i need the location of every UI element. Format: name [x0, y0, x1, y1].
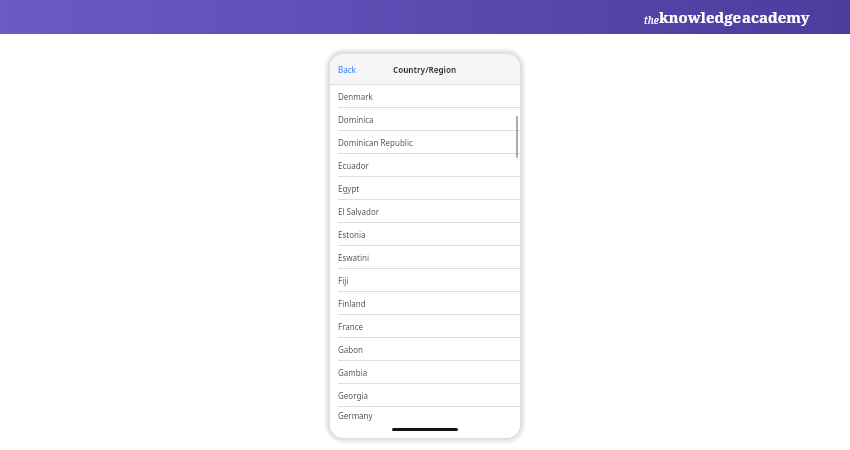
button[interactable]: Egypt — [330, 177, 520, 200]
staticText: Denmark — [338, 91, 373, 102]
staticText: Estonia — [338, 229, 366, 240]
staticText: Ecuador — [338, 160, 369, 171]
button[interactable]: El Salvador — [330, 200, 520, 223]
button[interactable]: Germany — [330, 407, 520, 424]
staticText: El Salvador — [338, 206, 380, 217]
staticText: knowledge — [659, 7, 742, 27]
button[interactable]: Denmark — [330, 85, 520, 108]
button[interactable]: Back — [335, 59, 359, 80]
staticText: Gabon — [338, 344, 364, 355]
staticText: Dominica — [338, 114, 374, 125]
staticText: Egypt — [338, 183, 360, 194]
staticText: Country/Region — [393, 64, 457, 75]
staticText: Gambia — [338, 367, 368, 378]
staticText: France — [338, 321, 364, 332]
button[interactable]: Ecuador — [330, 154, 520, 177]
staticText: academy — [742, 7, 810, 27]
button[interactable]: Finland — [330, 292, 520, 315]
button[interactable]: Gabon — [330, 338, 520, 361]
button[interactable]: Gambia — [330, 361, 520, 384]
staticText: Georgia — [338, 390, 368, 401]
staticText: Dominican Republic — [338, 137, 413, 148]
button[interactable]: Dominica — [330, 108, 520, 131]
button[interactable]: Estonia — [330, 223, 520, 246]
staticText: Eswatini — [338, 252, 370, 263]
button[interactable]: Eswatini — [330, 246, 520, 269]
button[interactable]: Dominican Republic — [330, 131, 520, 154]
staticText: Fiji — [338, 275, 349, 286]
staticText: Back — [338, 64, 356, 75]
staticText: Germany — [338, 410, 373, 421]
button[interactable]: Georgia — [330, 384, 520, 407]
staticText: Finland — [338, 298, 366, 309]
button[interactable]: France — [330, 315, 520, 338]
staticText: the — [644, 13, 659, 27]
button[interactable]: Fiji — [330, 269, 520, 292]
